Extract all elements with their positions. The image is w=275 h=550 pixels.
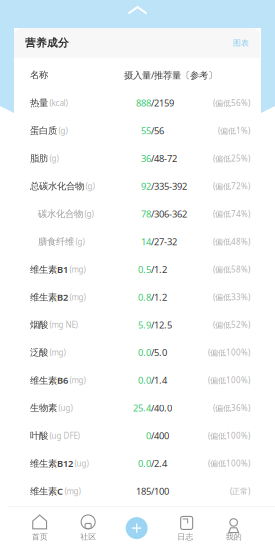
staticText: (mg) [64, 486, 80, 496]
staticText: /1.4 [151, 374, 167, 386]
button[interactable]: 社区 [64, 506, 112, 550]
staticText: /1.2 [151, 291, 167, 303]
staticText: 热量 [30, 97, 48, 109]
staticText: (偏低100%) [208, 458, 250, 469]
staticText: 首页 [32, 532, 48, 542]
staticText: 36 [141, 152, 151, 165]
staticText: (偏低74%) [213, 209, 250, 219]
button[interactable]: 日志 [161, 506, 209, 550]
staticText: /100 [151, 485, 169, 497]
staticText: (ug DFE) [49, 430, 79, 441]
staticText: (ug) [74, 458, 88, 469]
staticText: /400 [151, 429, 169, 442]
staticText: 生物素 [30, 402, 57, 414]
staticText: (g) [49, 153, 58, 164]
staticText: 78 [141, 208, 151, 220]
staticText: (正常) [230, 486, 250, 496]
staticText: 14 [141, 235, 151, 248]
staticText: 维生素B2 [30, 291, 68, 303]
staticText: 0.8 [138, 291, 151, 303]
staticText: (偏低100%) [208, 430, 250, 441]
staticText: 蛋白质 [30, 125, 57, 136]
staticText: 碳水化合物 [38, 208, 83, 220]
button[interactable]: 添加 [112, 506, 161, 550]
staticText: 0.0 [138, 457, 151, 470]
staticText: 0 [146, 429, 151, 442]
staticText: (g) [84, 209, 93, 219]
staticText: 总碳水化合物 [30, 180, 84, 192]
staticText: (偏低72%) [213, 181, 250, 191]
staticText: 92 [141, 180, 151, 192]
staticText: (偏低1%) [218, 125, 250, 136]
staticText: (g) [58, 125, 67, 136]
staticText: 185 [136, 485, 151, 497]
staticText: 叶酸 [30, 430, 48, 441]
staticText: 我的 [226, 532, 242, 542]
staticText: 日志 [177, 532, 193, 542]
staticText: (g) [75, 236, 84, 247]
staticText: 0.0 [138, 374, 151, 386]
button[interactable]: 我的 [209, 506, 258, 550]
staticText: (mg) [49, 347, 65, 358]
staticText: 25.4 [133, 402, 151, 414]
staticText: /306-362 [151, 208, 187, 220]
staticText: /2159 [151, 97, 174, 109]
staticText: 0.5 [138, 263, 151, 275]
staticText: 膳食纤维 [38, 236, 74, 247]
staticText: 维生素B1 [30, 263, 68, 275]
staticText: (偏低52%) [213, 319, 250, 330]
staticText: 888 [136, 97, 151, 109]
staticText: /40.0 [151, 402, 172, 414]
staticText: 泛酸 [30, 347, 48, 358]
staticText: (mg) [69, 292, 85, 302]
staticText: 烟酸 [30, 319, 48, 330]
staticText: 55 [141, 124, 151, 137]
staticText: 图表 [233, 38, 249, 48]
staticText: 维生素C [30, 485, 63, 497]
staticText: (偏低33%) [213, 292, 250, 302]
staticText: /48-72 [151, 152, 177, 165]
staticText: (偏低56%) [213, 98, 250, 108]
staticText: (偏低100%) [208, 347, 250, 358]
button[interactable]: 首页 [15, 506, 64, 550]
staticText: (偏低100%) [208, 375, 250, 385]
staticText: 名称 [30, 69, 48, 81]
staticText: 社区 [80, 532, 96, 542]
staticText: 维生素B12 [30, 457, 73, 470]
staticText: 0.0 [138, 346, 151, 359]
staticText: /27-32 [151, 235, 177, 248]
staticText: /2.4 [151, 457, 167, 470]
staticText: (偏低48%) [213, 236, 250, 247]
staticText: 营养成分 [25, 36, 69, 49]
staticText: /5.0 [151, 346, 167, 359]
staticText: (偏低36%) [213, 403, 250, 413]
staticText: /56 [151, 124, 164, 137]
staticText: (mg) [69, 375, 85, 385]
staticText: (ug) [58, 403, 72, 413]
staticText: 5.9 [138, 319, 151, 331]
staticText: /1.2 [151, 263, 167, 275]
staticText: 脂肪 [30, 153, 48, 164]
staticText: /12.5 [151, 319, 172, 331]
staticText: (偏低25%) [213, 153, 250, 164]
staticText: (偏低58%) [213, 264, 250, 275]
staticText: /335-392 [151, 180, 187, 192]
staticText: 维生素B6 [30, 374, 68, 386]
staticText: (kcal) [49, 98, 67, 108]
staticText: (mg NE) [49, 319, 77, 330]
staticText: (g) [85, 181, 94, 191]
button[interactable]: 图表 [233, 38, 249, 48]
staticText: (mg) [69, 264, 85, 275]
staticText: 摄入量/推荐量〔参考〕 [124, 69, 217, 81]
